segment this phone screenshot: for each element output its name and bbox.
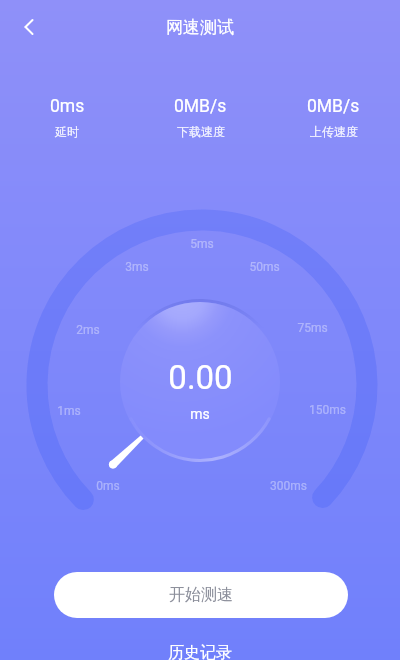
staticText: 0MB/s	[174, 96, 227, 117]
button[interactable]: Back	[8, 6, 50, 48]
staticText: 网速测试	[166, 17, 234, 38]
staticText: 2ms	[76, 323, 100, 337]
staticText: 150ms	[309, 403, 346, 417]
staticText: 0ms	[96, 479, 120, 493]
staticText: 0.00	[168, 358, 233, 397]
staticText: 0ms	[50, 96, 85, 117]
staticText: 50ms	[249, 260, 280, 274]
button[interactable]: 历史记录	[0, 643, 400, 660]
staticText: 300ms	[270, 479, 307, 493]
button[interactable]: 开始测速	[54, 572, 348, 618]
staticText: 上传速度	[310, 124, 358, 139]
staticText: 0MB/s	[307, 96, 360, 117]
staticText: 延时	[55, 124, 79, 139]
staticText: 3ms	[125, 260, 149, 274]
staticText: 5ms	[190, 237, 214, 251]
staticText: 历史记录	[168, 643, 232, 660]
staticText: 开始测速	[169, 585, 233, 605]
staticText: 下载速度	[177, 124, 225, 139]
staticText: 1ms	[57, 404, 81, 418]
staticText: 75ms	[297, 321, 328, 335]
staticText: ms	[190, 406, 210, 422]
